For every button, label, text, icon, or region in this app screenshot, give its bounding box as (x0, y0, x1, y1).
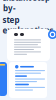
staticText: step explanations (2, 14, 53, 36)
staticText: Instant step-by- (3, 0, 53, 13)
